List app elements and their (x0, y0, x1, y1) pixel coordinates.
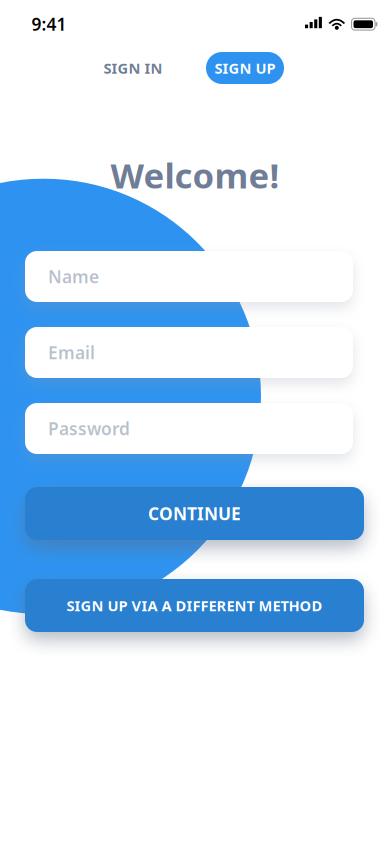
button[interactable]: SIGN UP (206, 52, 284, 84)
staticText: Password (48, 417, 130, 440)
staticText: SIGN UP VIA A DIFFERENT METHOD (66, 596, 322, 615)
button[interactable]: Password (25, 403, 353, 454)
staticText: 9:41 (31, 12, 66, 35)
staticText: SIGN IN (103, 58, 162, 78)
staticText: SIGN UP (214, 58, 275, 78)
staticText: Name (48, 265, 99, 288)
button[interactable]: Email (25, 327, 353, 378)
button[interactable]: SIGN UP VIA A DIFFERENT METHOD (25, 579, 364, 632)
button[interactable]: SIGN IN (91, 52, 175, 84)
button[interactable]: Name (25, 251, 353, 302)
button[interactable]: CONTINUE (25, 487, 364, 540)
staticText: CONTINUE (148, 502, 241, 525)
staticText: Welcome! (110, 152, 279, 198)
staticText: Email (48, 341, 95, 364)
